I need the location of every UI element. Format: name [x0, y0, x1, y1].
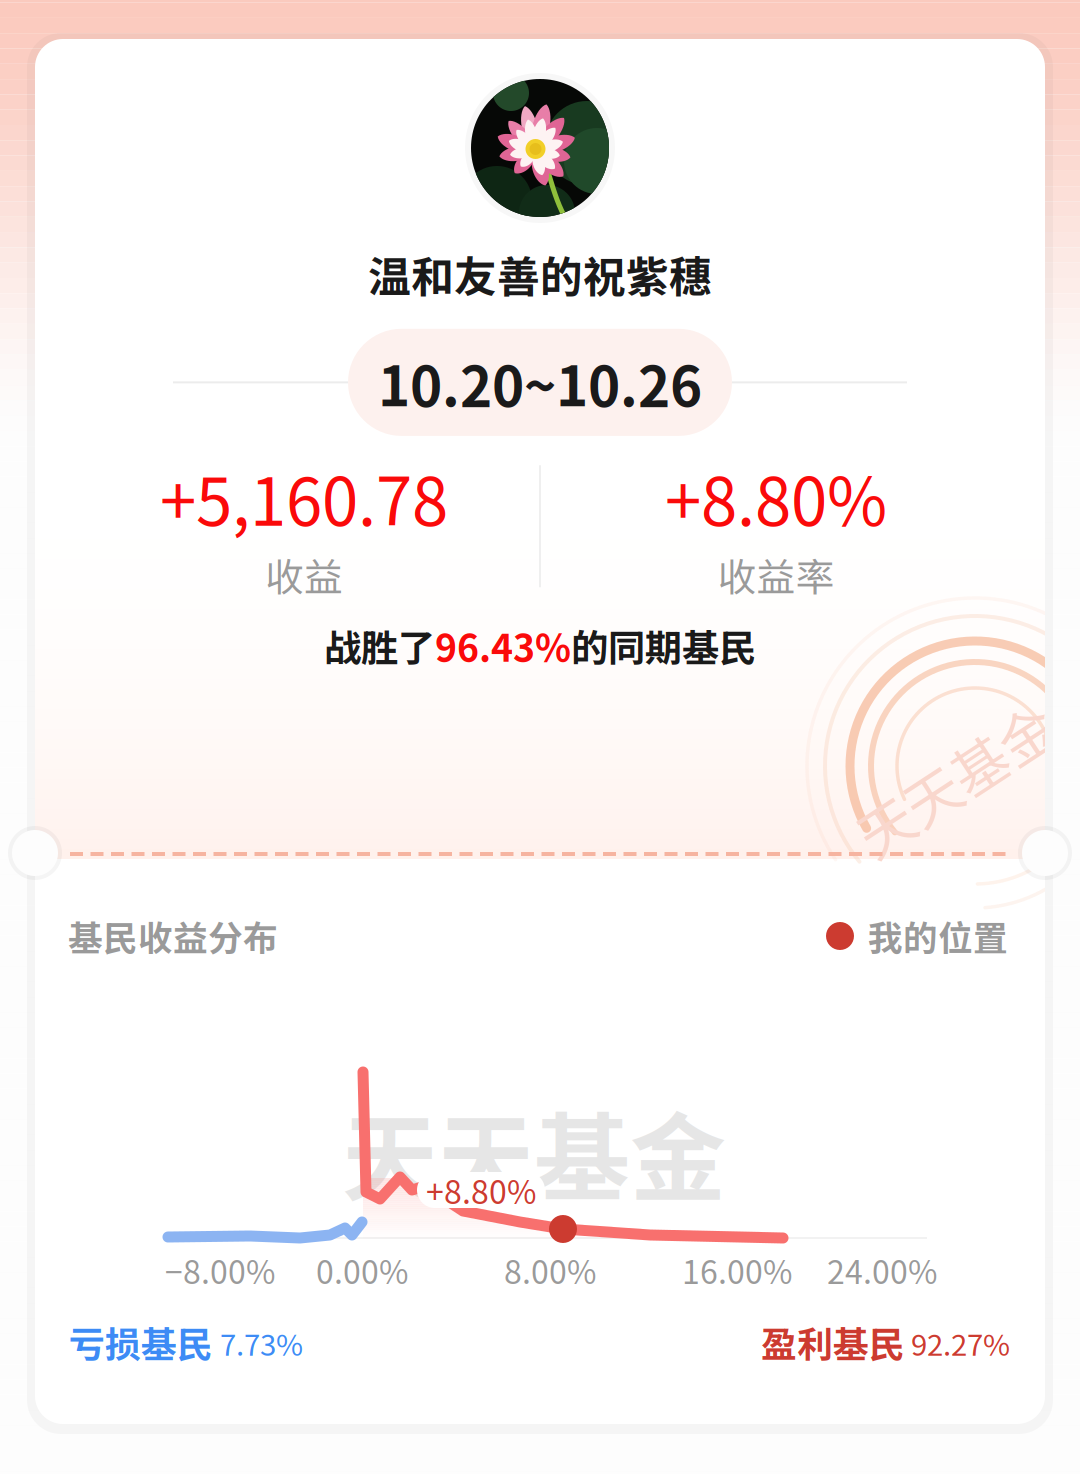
staticText: 的同期基民 [571, 618, 756, 673]
staticText: 战胜了 [324, 618, 435, 673]
staticText: 天天基金 [843, 738, 1067, 820]
staticText: 96.43% [435, 618, 571, 673]
staticText: 8.00% [504, 1247, 596, 1293]
staticText: 10.20~10.26 [378, 343, 702, 422]
staticText: 7.73% [220, 1322, 303, 1364]
staticText: +8.80% [665, 450, 887, 544]
staticText: 我的位置 [868, 911, 1008, 961]
staticText: 基民收益分布 [68, 911, 278, 961]
staticText: 92.27% [911, 1322, 1010, 1364]
staticText: 盈利基民 [761, 1316, 905, 1368]
staticText: 天天基金 [342, 1082, 726, 1221]
staticText: 24.00% [827, 1247, 937, 1293]
staticText: 收益 [265, 546, 343, 602]
staticText: +5,160.78 [160, 450, 448, 544]
staticText: 0.00% [316, 1247, 408, 1293]
staticText: 16.00% [682, 1247, 792, 1293]
staticText: 亏损基民 [69, 1316, 213, 1368]
staticText: 温和友善的祝紫穗 [368, 243, 712, 305]
staticText: +8.80% [426, 1167, 536, 1213]
staticText: −8.00% [165, 1247, 275, 1293]
staticText: 收益率 [717, 546, 834, 602]
